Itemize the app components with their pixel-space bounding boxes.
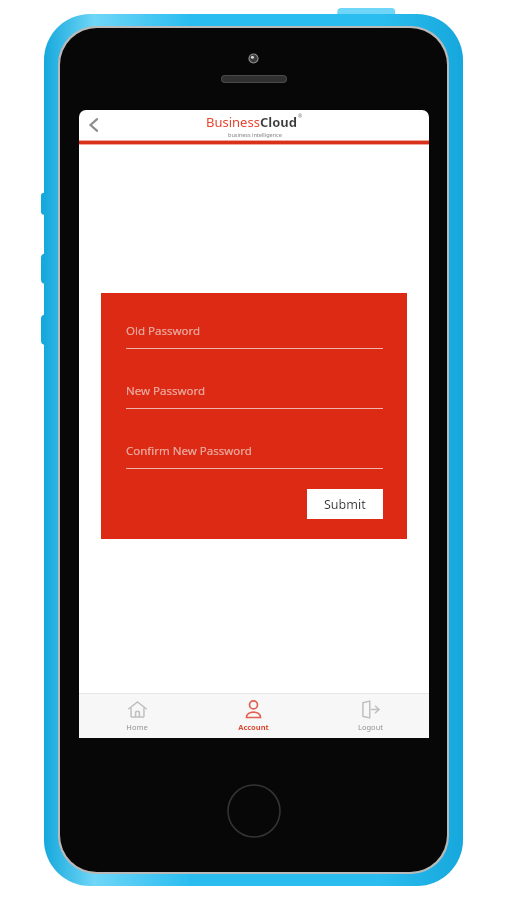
staticText: Submit: [324, 496, 366, 513]
button[interactable]: Submit: [307, 489, 383, 519]
staticText: Logout: [358, 722, 383, 732]
staticText: Business: [206, 113, 260, 131]
staticText: Account: [238, 722, 269, 732]
staticText: ®: [298, 113, 303, 120]
button[interactable]: Account: [195, 694, 312, 738]
staticText: Home: [126, 722, 148, 732]
button[interactable]: Back: [79, 110, 109, 140]
staticText: Confirm New Password: [126, 443, 252, 459]
staticText: Old Password: [126, 323, 201, 339]
staticText: business intelligence: [228, 131, 282, 138]
staticText: New Password: [126, 383, 206, 399]
button[interactable]: Home: [79, 694, 195, 738]
button[interactable]: Logout: [312, 694, 429, 738]
staticText: Cloud: [260, 113, 298, 131]
